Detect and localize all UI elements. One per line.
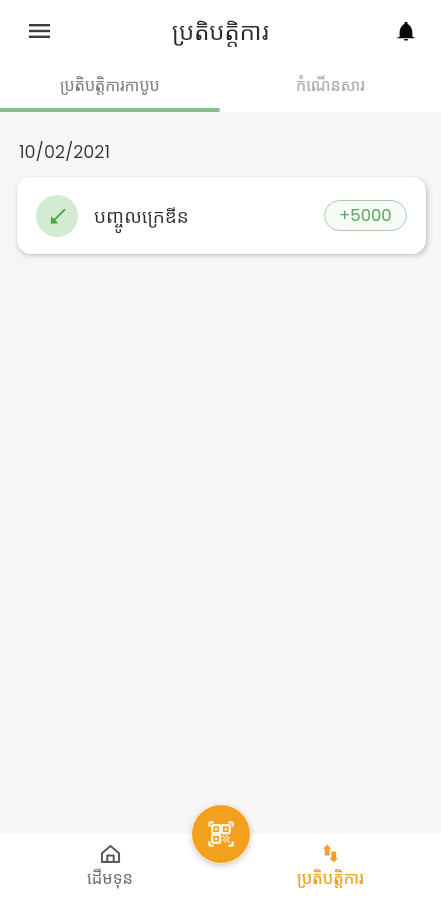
staticText: បញ្ចូលក្រេឌីន [94, 203, 189, 229]
button[interactable]: ប្រតិបត្តិការកាបូប [0, 62, 220, 108]
button[interactable]: ប្រតិបត្តិការ [220, 834, 441, 900]
staticText: ដើមទុន [87, 866, 134, 888]
staticText: 10/02/2021 [19, 140, 111, 165]
button[interactable]: Scan QR code [192, 805, 250, 863]
button[interactable]: ដើមទុន [0, 834, 220, 900]
button[interactable]: Menu [23, 15, 55, 47]
button[interactable]: កំណើនសារ [220, 62, 441, 108]
button[interactable]: Notifications [390, 15, 422, 47]
staticText: ប្រតិបត្តិការកាបូប [60, 74, 160, 96]
button[interactable]: បញ្ចូលក្រេឌីន [17, 177, 426, 254]
staticText: ប្រតិបត្តិការ [297, 866, 364, 888]
staticText: ប្រតិបត្តិការ [172, 14, 269, 47]
staticText: +5000 [339, 204, 392, 227]
staticText: កំណើនសារ [296, 74, 365, 96]
